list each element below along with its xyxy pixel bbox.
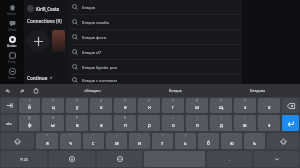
button[interactable]: + — [162, 115, 184, 131]
button[interactable]: Бэкдж брейк рол — [68, 60, 242, 74]
staticText: * — [46, 134, 48, 138]
button[interactable]: Symbols — [1, 151, 47, 167]
button[interactable]: Бэкджи — [246, 88, 270, 94]
button[interactable]: Player — [144, 36, 164, 65]
staticText: Connections (9) — [27, 18, 62, 24]
staticText: з — [244, 104, 247, 110]
button[interactable]: Store — [0, 66, 24, 82]
button[interactable]: Enter — [282, 115, 299, 131]
staticText: _ — [100, 116, 102, 120]
button[interactable]: 6 — [138, 98, 160, 113]
button[interactable]: _ — [90, 115, 112, 131]
button[interactable]: Player — [168, 36, 188, 65]
button[interactable]: ? — [175, 133, 196, 149]
button[interactable]: ю — [221, 133, 242, 149]
staticText: Home — [7, 12, 17, 16]
button[interactable]: Бэкдж с котиком — [68, 75, 242, 84]
staticText: Бэкджи — [250, 88, 266, 94]
button[interactable]: ! — [152, 133, 173, 149]
staticText: с — [92, 140, 95, 146]
button[interactable]: ; — [129, 133, 150, 149]
button[interactable]: ₽ — [66, 115, 88, 131]
staticText: : — [116, 134, 117, 138]
button[interactable]: 7 — [162, 98, 184, 113]
staticText: ы — [51, 122, 55, 128]
button[interactable]: Kirill_Costa — [27, 5, 60, 12]
button[interactable]: 5 — [114, 98, 136, 113]
button[interactable]: Бэкдж — [165, 88, 186, 94]
button[interactable]: * — [36, 133, 58, 149]
staticText: ж — [243, 122, 247, 128]
button[interactable]: Бэкдж — [68, 0, 242, 14]
staticText: ' — [93, 134, 94, 138]
staticText: я — [46, 140, 49, 146]
button[interactable]: " — [60, 133, 81, 149]
button[interactable]: Hide keyboard — [254, 151, 299, 167]
staticText: н — [148, 104, 151, 110]
staticText: . — [229, 157, 230, 162]
staticText: Player — [149, 57, 159, 61]
button[interactable]: Chats — [0, 18, 24, 34]
button[interactable]: 9 — [210, 98, 232, 113]
staticText: # — [52, 116, 54, 120]
button[interactable]: 1 — [19, 98, 40, 113]
button[interactable]: б — [198, 133, 219, 149]
button[interactable]: 8 — [186, 98, 208, 113]
staticText: + — [172, 116, 174, 120]
staticText: ъ — [253, 140, 256, 146]
button[interactable]: Backspace — [282, 98, 299, 113]
button[interactable]: & — [114, 115, 136, 131]
button[interactable]: - — [138, 115, 160, 131]
button[interactable]: Party — [0, 50, 24, 66]
button[interactable]: 4 — [90, 98, 112, 113]
button[interactable]: Redo — [17, 86, 26, 95]
button[interactable]: 0 — [234, 98, 256, 113]
button[interactable]: 3 — [66, 98, 88, 113]
button[interactable]: Language — [97, 151, 142, 167]
button[interactable]: Бэкдж фото — [68, 30, 242, 44]
button[interactable]: # — [42, 115, 64, 131]
button[interactable]: @ — [19, 115, 40, 131]
staticText: ; — [139, 134, 140, 138]
staticText: э — [268, 122, 271, 128]
button[interactable]: Emoji — [49, 151, 95, 167]
button[interactable]: Clipboard — [31, 86, 40, 95]
button[interactable]: х — [258, 98, 280, 113]
button[interactable]: «Бэкдж» — [80, 88, 105, 94]
button[interactable]: Avatar — [0, 34, 24, 50]
button[interactable]: ' — [83, 133, 104, 149]
button[interactable]: ъ — [244, 133, 265, 149]
staticText: б — [207, 140, 210, 146]
staticText: 5 — [124, 99, 126, 103]
button[interactable]: Бэкдж d7 — [68, 45, 242, 59]
button[interactable]: : — [106, 133, 127, 149]
button[interactable]: Shift — [267, 133, 299, 149]
button[interactable]: э — [258, 115, 280, 131]
staticText: «Бэкдж» — [84, 88, 101, 94]
button[interactable]: Бэкдж зомби — [68, 15, 242, 29]
button[interactable]: Player — [120, 36, 140, 65]
staticText: Continue — [27, 75, 48, 81]
button[interactable]: 2 — [42, 98, 64, 113]
staticText: у — [76, 104, 79, 110]
staticText: и — [138, 140, 141, 146]
button[interactable]: Continue — [27, 72, 71, 84]
button[interactable]: abc — [1, 115, 17, 131]
staticText: к — [100, 104, 103, 110]
button[interactable]: Home — [0, 2, 24, 18]
button[interactable]: ) — [210, 115, 232, 131]
button[interactable]: Undo — [3, 86, 12, 95]
button[interactable]: Add connection — [27, 30, 49, 52]
button[interactable]: Tab — [1, 98, 17, 113]
staticText: ч — [69, 140, 72, 146]
button[interactable]: ( — [186, 115, 208, 131]
staticText: ₽ — [76, 116, 78, 120]
staticText: 6 — [148, 99, 150, 103]
button[interactable]: / — [234, 115, 256, 131]
staticText: й — [28, 104, 31, 110]
staticText: 7 — [172, 99, 174, 103]
button[interactable]: Shift — [1, 133, 34, 149]
